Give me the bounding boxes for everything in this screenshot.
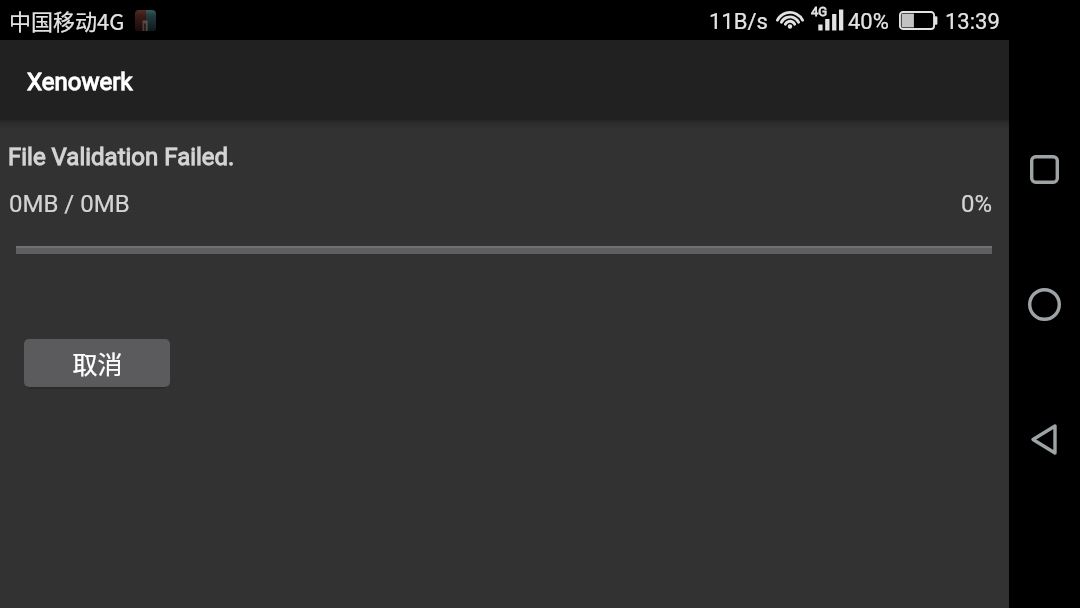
button[interactable]: 取消 xyxy=(24,339,170,387)
staticText: 取消 xyxy=(72,345,123,381)
button[interactable]: Back xyxy=(1014,409,1074,469)
button[interactable]: Home xyxy=(1014,274,1074,334)
staticText: 40% xyxy=(848,9,889,35)
staticText: File Validation Failed. xyxy=(8,143,235,171)
staticText: 0% xyxy=(961,190,993,218)
staticText: 中国移动4G xyxy=(9,4,125,36)
staticText: 4G xyxy=(811,4,828,19)
button[interactable]: Recents xyxy=(1014,139,1074,199)
staticText: 13:39 xyxy=(945,9,1000,35)
staticText: Xenowerk xyxy=(27,68,133,96)
staticText: 0MB / 0MB xyxy=(9,190,130,218)
staticText: 11B/s xyxy=(709,9,768,35)
